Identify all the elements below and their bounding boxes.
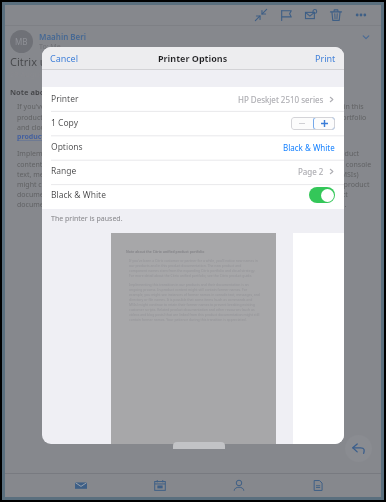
button[interactable]: Delete <box>323 5 348 25</box>
staticText: If you've been a Citrix customer or part… <box>129 258 260 278</box>
button[interactable]: People <box>199 474 278 497</box>
button[interactable]: 1 Copy <box>42 111 344 135</box>
button[interactable]: More <box>348 5 373 25</box>
staticText: Maahin Beri <box>39 31 87 42</box>
staticText: Black & White <box>283 142 335 153</box>
staticText: 1 Copy <box>51 117 78 129</box>
staticText: If you've been a Citrix customer or part… <box>17 102 373 132</box>
button[interactable]: Flag <box>273 5 298 25</box>
button[interactable]: Options <box>42 135 344 159</box>
staticText: Citrix unified product portfolio <box>10 54 167 69</box>
button[interactable]: Range <box>42 159 344 183</box>
button[interactable]: Decrease copies <box>291 117 313 130</box>
button[interactable]: Files <box>278 474 357 497</box>
staticText: MB <box>15 36 28 47</box>
staticText: Implementing this transition in our prod… <box>17 149 373 209</box>
staticText: Range <box>51 165 77 177</box>
button[interactable]: Printer <box>42 87 344 111</box>
button[interactable]: Increase copies <box>313 117 335 130</box>
button[interactable]: Expand <box>359 30 373 44</box>
staticText: To: Me <box>39 42 61 52</box>
staticText: Print <box>315 52 336 64</box>
button[interactable]: Black & White <box>42 183 344 207</box>
button[interactable]: Black and White toggle <box>309 187 335 203</box>
staticText: Page 2 <box>298 166 324 177</box>
staticText: Printer <box>51 93 79 105</box>
staticText: Implementing this transition in our prod… <box>129 282 260 322</box>
staticText: Note about the Citrix unified product po… <box>10 87 184 97</box>
staticText: Options <box>51 141 83 153</box>
button[interactable]: Collapse <box>248 5 273 25</box>
staticText: HP Deskjet 2510 series <box>238 94 324 105</box>
staticText: The printer is paused. <box>51 214 123 224</box>
staticText: Note about the Citrix unified product po… <box>126 249 205 254</box>
staticText: Printer Options <box>158 52 228 64</box>
staticText: product guide <box>17 132 66 142</box>
staticText: Black & White <box>51 189 106 201</box>
button[interactable]: Reply <box>345 435 372 462</box>
button[interactable]: Mail <box>42 474 120 497</box>
staticText: Cancel <box>50 52 79 64</box>
staticText: 23 August 2019 at 09:41 <box>10 69 95 79</box>
button[interactable]: Calendar <box>120 474 199 497</box>
button[interactable]: Cancel <box>42 47 87 69</box>
button[interactable]: Print <box>307 47 344 69</box>
button[interactable]: Mark unread <box>298 5 323 25</box>
